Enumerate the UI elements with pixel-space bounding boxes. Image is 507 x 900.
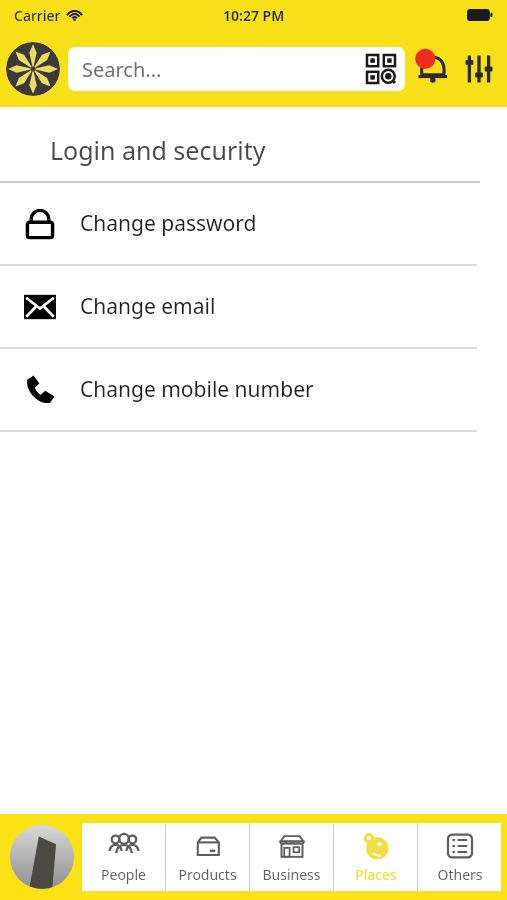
staticText: People <box>101 865 146 884</box>
staticText: Products <box>178 865 237 884</box>
button[interactable]: People <box>82 823 165 891</box>
staticText: Login and security <box>50 133 266 167</box>
button[interactable]: Others <box>418 823 501 891</box>
button[interactable]: Products <box>166 823 249 891</box>
button[interactable]: Profile <box>10 825 74 889</box>
staticText: Change password <box>80 209 257 238</box>
staticText: Business <box>262 865 321 884</box>
button[interactable]: Business <box>250 823 333 891</box>
staticText: Places <box>355 865 397 884</box>
button[interactable]: Notifications <box>409 46 455 92</box>
staticText: Others <box>437 865 483 884</box>
staticText: Carrier <box>14 6 61 25</box>
button[interactable]: Change password <box>0 183 507 264</box>
staticText: Search... <box>82 56 162 83</box>
button[interactable]: App logo <box>6 42 60 96</box>
button[interactable]: Places <box>334 823 417 891</box>
button[interactable]: Scan QR code <box>367 55 395 83</box>
staticText: 10:27 PM <box>223 6 285 25</box>
button[interactable]: Change mobile number <box>0 349 507 430</box>
button[interactable]: Search... <box>68 47 405 91</box>
staticText: Change email <box>80 292 216 321</box>
button[interactable]: Filters <box>457 47 501 91</box>
button[interactable]: Change email <box>0 266 507 347</box>
staticText: Change mobile number <box>80 375 314 404</box>
